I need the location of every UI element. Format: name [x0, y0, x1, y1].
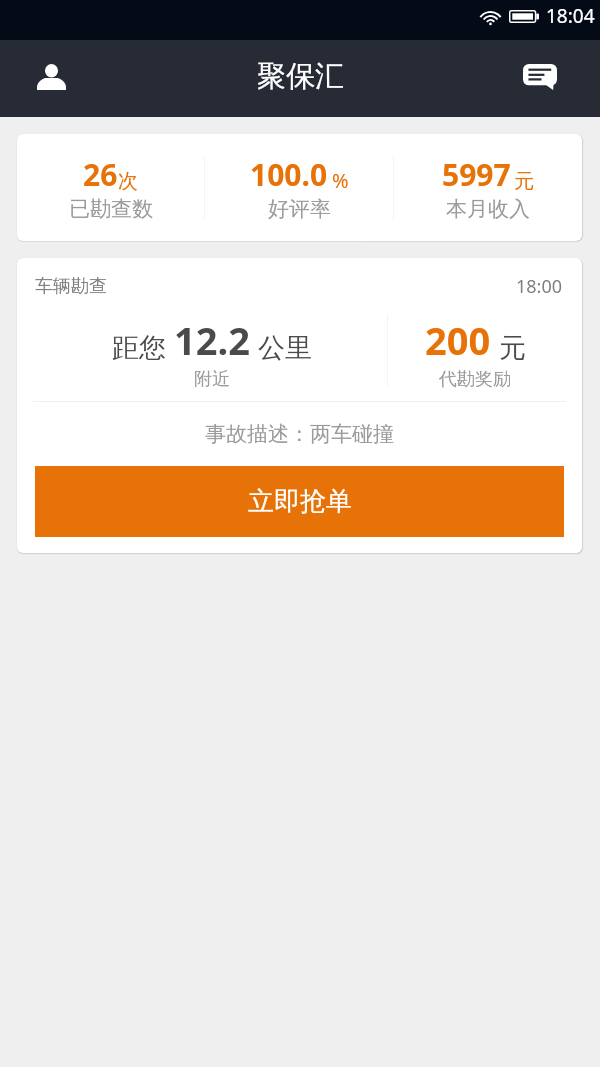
staticText: 聚保汇 [257, 58, 344, 95]
staticText: 18:00 [516, 274, 563, 299]
staticText: 200 [425, 314, 491, 366]
staticText: 立即抢单 [248, 485, 352, 518]
staticText: 已勘查数 [69, 196, 153, 222]
staticText: 附近 [194, 368, 230, 391]
staticText: 100.0 [250, 154, 328, 195]
staticText: 本月收入 [446, 196, 530, 222]
button[interactable]: 立即抢单 [35, 466, 564, 537]
staticText: 5997 [442, 154, 511, 195]
button[interactable]: 车辆勘查 [17, 258, 582, 553]
staticText: 12.2 [174, 314, 250, 366]
button[interactable]: 5997 [394, 154, 582, 222]
button[interactable]: Profile [0, 40, 102, 117]
staticText: 车辆勘查 [35, 275, 107, 298]
staticText: 距您 [112, 331, 166, 365]
staticText: 好评率 [268, 196, 331, 222]
button[interactable]: 26 [17, 154, 204, 222]
button[interactable]: 100.0 [205, 154, 393, 222]
staticText: 元 [514, 169, 534, 194]
staticText: 代勘奖励 [439, 368, 511, 391]
staticText: 元 [499, 331, 526, 365]
staticText: 18:04 [546, 3, 595, 29]
staticText: % [332, 167, 349, 194]
staticText: 事故描述：两车碰撞 [205, 421, 394, 447]
staticText: 公里 [258, 331, 312, 365]
button[interactable]: Messages [480, 40, 600, 117]
staticText: 26 [83, 154, 118, 195]
staticText: 次 [118, 169, 138, 194]
